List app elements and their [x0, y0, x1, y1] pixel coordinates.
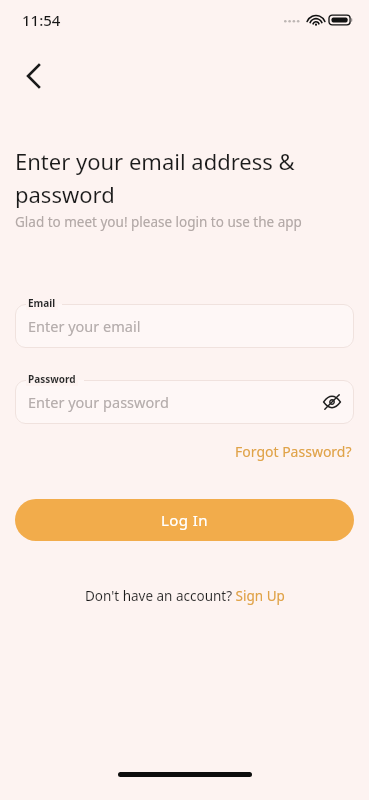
- staticText: Enter your email: [28, 316, 141, 336]
- button[interactable]: [15, 304, 354, 348]
- staticText: Email: [28, 296, 56, 310]
- button[interactable]: Forgot Password?: [232, 439, 355, 464]
- staticText: Enter your email address & password: [15, 146, 295, 209]
- button[interactable]: [15, 380, 354, 424]
- staticText: Don't have an account? Sign Up: [85, 587, 285, 605]
- button[interactable]: Don't have an account? Sign Up: [81, 584, 289, 608]
- staticText: Password: [28, 372, 76, 386]
- staticText: Forgot Password?: [235, 442, 352, 461]
- button[interactable]: Toggle password visibility: [310, 380, 354, 424]
- button[interactable]: Log In: [15, 499, 354, 541]
- staticText: Enter your password: [28, 392, 169, 412]
- staticText: Glad to meet you! please login to use th…: [15, 213, 302, 231]
- staticText: Log In: [161, 510, 208, 530]
- button[interactable]: Back: [10, 53, 56, 99]
- staticText: 11:54: [22, 10, 61, 30]
